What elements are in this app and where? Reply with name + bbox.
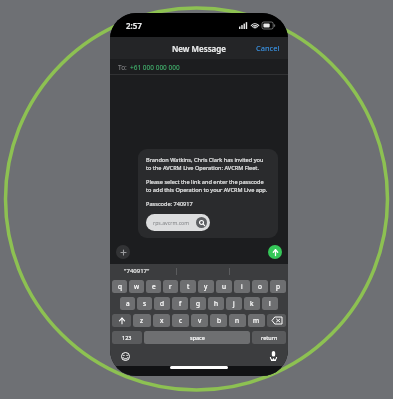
staticText: e bbox=[152, 282, 156, 291]
staticText: v bbox=[198, 316, 202, 325]
button[interactable]: Brandon Watkins, Chris Clark has invited… bbox=[138, 149, 278, 238]
staticText: n bbox=[235, 316, 240, 325]
staticText: 2:57 bbox=[126, 20, 142, 31]
button[interactable]: 123 bbox=[112, 331, 142, 344]
button[interactable]: q bbox=[112, 280, 127, 293]
staticText: Brandon Watkins, Chris Clark has invited… bbox=[146, 156, 270, 172]
staticText: x bbox=[160, 316, 164, 325]
button[interactable]: g bbox=[190, 297, 206, 310]
button[interactable]: y bbox=[198, 280, 214, 293]
staticText: space bbox=[190, 334, 205, 341]
button[interactable]: Shift bbox=[112, 314, 131, 327]
button[interactable]: Emoji bbox=[119, 350, 131, 362]
button[interactable]: Cancel bbox=[248, 39, 288, 57]
button[interactable]: b bbox=[210, 314, 227, 327]
button[interactable]: e bbox=[146, 280, 161, 293]
staticText: Please select the link and enter the pas… bbox=[146, 178, 270, 194]
staticText: "740917" bbox=[124, 267, 150, 275]
staticText: c bbox=[179, 316, 183, 325]
button[interactable]: p bbox=[270, 280, 286, 293]
button[interactable]: m bbox=[248, 314, 265, 327]
button[interactable]: v bbox=[191, 314, 208, 327]
button[interactable]: l bbox=[262, 297, 278, 310]
button[interactable]: i bbox=[234, 280, 250, 293]
button[interactable]: r bbox=[163, 280, 178, 293]
staticText: z bbox=[140, 316, 144, 325]
button[interactable]: Send bbox=[268, 245, 282, 259]
button[interactable]: n bbox=[229, 314, 246, 327]
staticText: f bbox=[179, 299, 182, 308]
staticText: k bbox=[250, 299, 254, 308]
staticText: +61 000 000 000 bbox=[130, 63, 180, 72]
staticText: i bbox=[241, 282, 243, 291]
button[interactable]: h bbox=[208, 297, 224, 310]
staticText: j bbox=[233, 299, 235, 308]
button[interactable]: rps.avcrm.com bbox=[146, 214, 210, 231]
staticText: New Message bbox=[172, 43, 226, 54]
staticText: l bbox=[269, 299, 271, 308]
button[interactable]: s bbox=[137, 297, 152, 310]
staticText: q bbox=[118, 282, 122, 291]
staticText: d bbox=[160, 299, 164, 308]
staticText: g bbox=[196, 299, 200, 308]
button[interactable]: u bbox=[216, 280, 232, 293]
button[interactable]: t bbox=[180, 280, 196, 293]
staticText: t bbox=[187, 282, 190, 291]
staticText: s bbox=[143, 299, 147, 308]
staticText: m bbox=[253, 316, 260, 325]
button[interactable]: Dictate bbox=[267, 350, 279, 362]
staticText: u bbox=[222, 282, 227, 291]
button[interactable]: c bbox=[172, 314, 189, 327]
staticText: b bbox=[217, 316, 221, 325]
staticText: o bbox=[258, 282, 262, 291]
button[interactable]: Add attachment bbox=[116, 245, 130, 259]
staticText: To: bbox=[118, 63, 127, 72]
button[interactable]: z bbox=[133, 314, 151, 327]
button[interactable]: o bbox=[252, 280, 268, 293]
staticText: rps.avcrm.com bbox=[153, 219, 190, 226]
staticText: Passcode: 740917 bbox=[146, 200, 193, 208]
button[interactable]: d bbox=[154, 297, 170, 310]
button[interactable]: a bbox=[120, 297, 135, 310]
button[interactable]: Backspace bbox=[267, 314, 286, 327]
staticText: return bbox=[261, 334, 278, 341]
staticText: Cancel bbox=[256, 43, 280, 53]
button[interactable]: w bbox=[129, 280, 144, 293]
staticText: p bbox=[276, 282, 280, 291]
staticText: w bbox=[134, 282, 140, 291]
button[interactable]: x bbox=[153, 314, 170, 327]
button[interactable]: return bbox=[252, 331, 286, 344]
staticText: h bbox=[214, 299, 219, 308]
button[interactable]: k bbox=[244, 297, 260, 310]
button[interactable]: f bbox=[172, 297, 188, 310]
staticText: a bbox=[126, 299, 130, 308]
staticText: r bbox=[169, 282, 172, 291]
button[interactable]: space bbox=[144, 331, 250, 344]
staticText: y bbox=[204, 282, 208, 291]
staticText: 123 bbox=[122, 334, 132, 341]
button[interactable]: j bbox=[226, 297, 242, 310]
